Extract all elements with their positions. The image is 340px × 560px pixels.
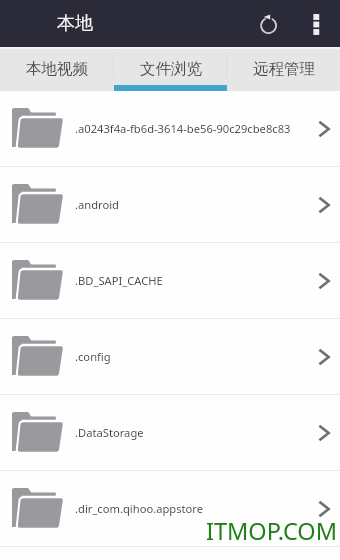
button[interactable]: .a0243f4a-fb6d-3614-be56-90c29cbe8c83 — [0, 91, 340, 166]
button[interactable]: .dir_com.qihoo.appstore — [0, 471, 340, 546]
button[interactable]: More options — [300, 8, 332, 40]
button[interactable]: .DataStorage — [0, 395, 340, 470]
staticText: 本地 — [57, 12, 93, 35]
button[interactable]: .config — [0, 319, 340, 394]
button[interactable]: .android — [0, 167, 340, 242]
button[interactable]: 本地视频 — [0, 47, 114, 91]
staticText: ITMOP.COM — [206, 515, 338, 547]
button[interactable]: 文件浏览 — [114, 47, 227, 91]
staticText: .BD_SAPI_CACHE — [75, 273, 307, 288]
button[interactable]: Refresh — [250, 7, 284, 41]
staticText: .android — [75, 197, 307, 212]
staticText: .config — [75, 349, 307, 364]
staticText: .dir_com.qihoo.appstore — [75, 501, 307, 516]
staticText: 远程管理 — [253, 59, 315, 79]
staticText: .a0243f4a-fb6d-3614-be56-90c29cbe8c83 — [75, 121, 307, 136]
staticText: 文件浏览 — [140, 59, 202, 79]
staticText: .DataStorage — [75, 425, 307, 440]
staticText: 本地视频 — [26, 59, 88, 79]
button[interactable]: .BD_SAPI_CACHE — [0, 243, 340, 318]
button[interactable]: 远程管理 — [227, 47, 340, 91]
